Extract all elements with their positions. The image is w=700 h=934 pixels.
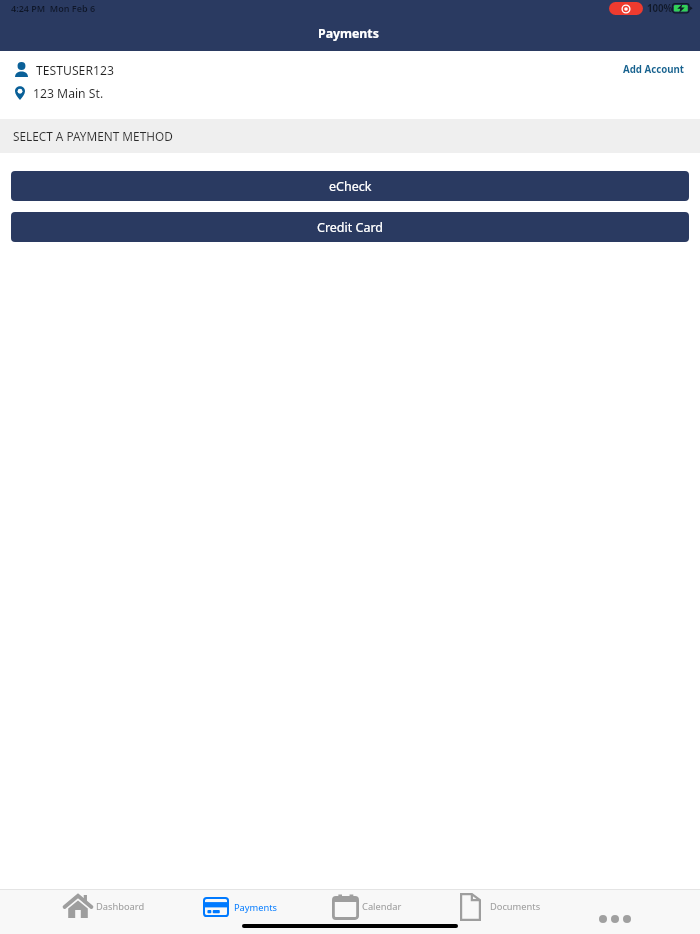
staticText: SELECT A PAYMENT METHOD [13,128,173,144]
staticText: Dashboard [96,900,145,913]
button[interactable]: More options [596,910,634,928]
staticText: TESTUSER123 [36,62,114,79]
staticText: 123 Main St. [33,85,104,102]
staticText: eCheck [329,178,372,195]
staticText: 4:24 PM Mon Feb 6 [11,2,96,14]
staticText: Payments [318,25,379,42]
button[interactable]: Add Account [623,51,700,76]
staticText: Payments [234,901,278,914]
button[interactable]: Calendar [323,889,410,924]
staticText: Add Account [623,63,685,76]
staticText: Credit Card [317,219,384,236]
button[interactable]: Dashboard [56,892,153,921]
button[interactable]: Payments [195,894,286,920]
button[interactable]: eCheck [11,171,689,201]
button[interactable]: Credit Card [11,212,689,242]
staticText: Calendar [362,900,402,913]
staticText: Documents [490,900,541,913]
button[interactable]: Documents [452,889,549,924]
staticText: 100% [647,2,673,15]
